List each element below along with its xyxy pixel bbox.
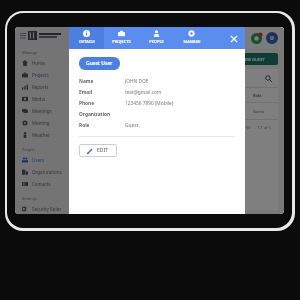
- staticText: Search: [83, 75, 98, 81]
- staticText: DETAILS: [79, 39, 95, 44]
- button[interactable]: Weather: [20, 129, 66, 141]
- staticText: JOHN DOE: [125, 78, 149, 85]
- staticText: Home: [32, 60, 45, 66]
- button[interactable]: PEOPLE: [139, 27, 174, 49]
- other: Search: [265, 75, 272, 82]
- staticText: Media: [32, 96, 46, 102]
- staticText: 50: [246, 125, 251, 130]
- button[interactable]: Meeting: [20, 117, 66, 129]
- staticText: MANAGE: [183, 39, 201, 44]
- staticText: Projects: [32, 72, 49, 78]
- staticText: Manage: [22, 50, 38, 55]
- button[interactable]: Media: [20, 93, 66, 105]
- staticText: Email: [79, 89, 93, 96]
- button[interactable]: Organizations: [20, 166, 66, 178]
- staticText: Role: [253, 93, 262, 98]
- staticText: Meetings: [32, 108, 52, 114]
- staticText: Meeting: [32, 120, 50, 126]
- button[interactable]: PROJECTS: [104, 27, 139, 49]
- button[interactable]: MANAGE: [174, 27, 209, 49]
- staticText: PROJECTS: [112, 39, 131, 44]
- staticText: Phone: [79, 100, 95, 107]
- staticText: Contacts: [32, 181, 51, 187]
- button[interactable]: Guest User: [79, 57, 120, 70]
- staticText: Reports: [32, 84, 49, 90]
- button[interactable]: Reports: [20, 81, 66, 93]
- staticText: Role: [79, 122, 90, 129]
- staticText: Weather: [32, 132, 50, 138]
- button[interactable]: Home: [20, 57, 66, 69]
- staticText: People: [22, 147, 35, 152]
- staticText: Users: [32, 157, 44, 163]
- button[interactable]: Close: [229, 34, 238, 43]
- button[interactable]: Security Roles: [20, 203, 66, 214]
- button[interactable]: Contacts: [20, 178, 66, 190]
- button[interactable]: Projects: [20, 69, 66, 81]
- staticText: IMPORT: [217, 36, 233, 41]
- staticText: 1-1 of 1: [257, 125, 272, 130]
- button[interactable]: Users: [20, 154, 66, 166]
- staticText: NEW GUEST: [242, 57, 265, 62]
- staticText: Organizations: [32, 169, 62, 175]
- staticText: EDIT: [97, 147, 109, 154]
- button[interactable]: Account: [266, 32, 278, 44]
- staticText: test@gmail.com: [125, 89, 162, 96]
- button[interactable]: Meetings: [20, 105, 66, 117]
- staticText: Organization: [79, 111, 111, 118]
- button[interactable]: NEW GUEST: [228, 53, 278, 65]
- button[interactable]: DETAILS: [69, 27, 104, 49]
- staticText: PEOPLE: [149, 39, 164, 44]
- button[interactable]: Notifications: [251, 33, 262, 44]
- staticText: 123456 7890 (Mobile): [125, 100, 174, 107]
- staticText: Guest: [125, 122, 139, 129]
- staticText: U: [270, 35, 274, 42]
- button[interactable]: IMPORT: [205, 33, 245, 44]
- button[interactable]: EDIT: [79, 144, 117, 157]
- staticText: Guest User: [86, 60, 113, 67]
- staticText: Name: [79, 78, 94, 85]
- staticText: Settings: [22, 196, 38, 201]
- staticText: Security Roles: [32, 206, 62, 212]
- button[interactable]: Guest: [83, 103, 272, 119]
- staticText: Guest: [253, 109, 264, 114]
